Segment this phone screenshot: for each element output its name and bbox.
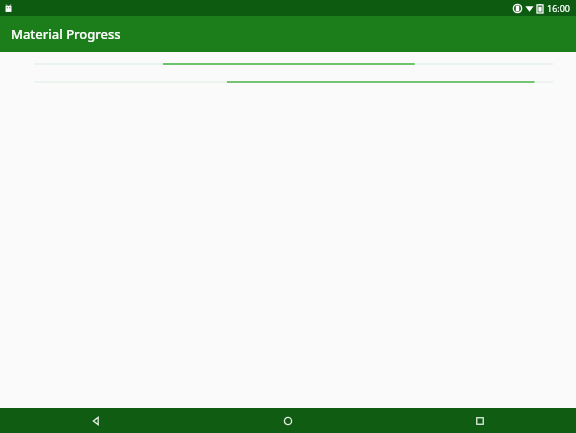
button[interactable] — [0, 62, 576, 66]
button[interactable] — [0, 80, 576, 84]
staticText: Material Progress — [11, 25, 121, 43]
button[interactable]: Recent apps — [384, 408, 576, 433]
staticText: 16:00 — [547, 2, 571, 14]
button[interactable]: Back — [0, 408, 192, 433]
button[interactable]: Material Progress — [0, 16, 576, 52]
button[interactable]: Home — [192, 408, 384, 433]
